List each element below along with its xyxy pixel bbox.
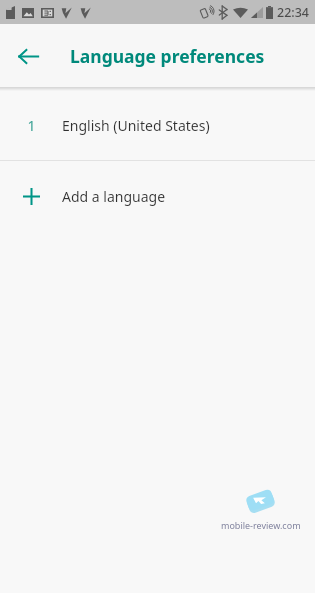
- staticText: 22:34: [277, 4, 310, 21]
- staticText: Language preferences: [70, 44, 265, 68]
- staticText: mobile-review.com: [221, 519, 301, 531]
- button[interactable]: Navigate up: [6, 34, 50, 78]
- staticText: Add a language: [62, 187, 166, 206]
- button[interactable]: 1: [0, 91, 315, 160]
- staticText: 1: [27, 116, 36, 135]
- staticText: English (United States): [62, 116, 210, 135]
- button[interactable]: Add a language: [0, 161, 315, 231]
